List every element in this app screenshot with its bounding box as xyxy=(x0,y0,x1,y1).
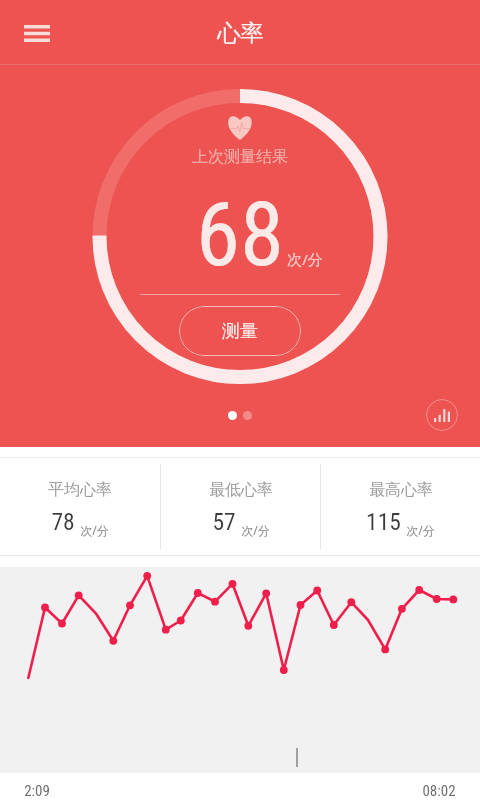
staticText: 最高心率 xyxy=(369,480,433,500)
staticText: 最低心率 xyxy=(209,480,273,500)
staticText: 78 xyxy=(51,508,75,536)
staticText: 次/分 xyxy=(241,522,270,538)
button[interactable]: 测量 xyxy=(179,306,301,356)
staticText: 68 xyxy=(196,182,284,286)
staticText: 上次测量结果 xyxy=(192,147,288,167)
staticText: 心率 xyxy=(217,18,264,48)
button[interactable]: History chart xyxy=(426,399,458,431)
staticText: 次/分 xyxy=(287,249,323,269)
button[interactable]: 平均心率 xyxy=(0,480,160,555)
button[interactable]: 最高心率 xyxy=(321,480,480,555)
staticText: 08:02 xyxy=(422,782,456,800)
staticText: 2:09 xyxy=(24,782,50,800)
staticText: 平均心率 xyxy=(48,480,112,500)
staticText: 次/分 xyxy=(80,522,109,538)
button[interactable]: Menu xyxy=(12,8,62,58)
staticText: 115 xyxy=(366,508,401,536)
staticText: 57 xyxy=(212,508,236,536)
button[interactable]: 最低心率 xyxy=(161,480,320,555)
staticText: 次/分 xyxy=(406,522,435,538)
staticText: 测量 xyxy=(222,320,258,343)
